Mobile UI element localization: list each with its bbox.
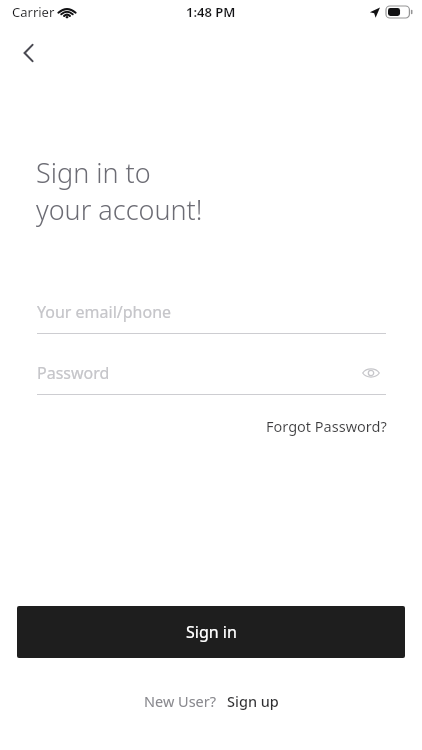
staticText: Password [37, 362, 110, 384]
button[interactable]: Sign in [17, 606, 405, 658]
button[interactable]: Password [37, 357, 386, 395]
staticText: Carrier [12, 3, 55, 21]
staticText: Sign up [227, 691, 279, 711]
staticText: Your email/phone [37, 301, 172, 323]
staticText: New User? [144, 691, 217, 711]
button[interactable]: Show password [356, 358, 386, 388]
button[interactable]: Forgot Password? [266, 416, 387, 436]
button[interactable]: Sign up [227, 691, 279, 711]
staticText: Sign in to [36, 154, 151, 191]
staticText: 1:48 PM [186, 3, 236, 21]
staticText: Forgot Password? [266, 416, 387, 436]
button[interactable]: Your email/phone [37, 296, 386, 334]
staticText: Sign in [186, 621, 237, 643]
staticText: your account! [36, 191, 203, 228]
button[interactable]: Back [7, 31, 51, 75]
